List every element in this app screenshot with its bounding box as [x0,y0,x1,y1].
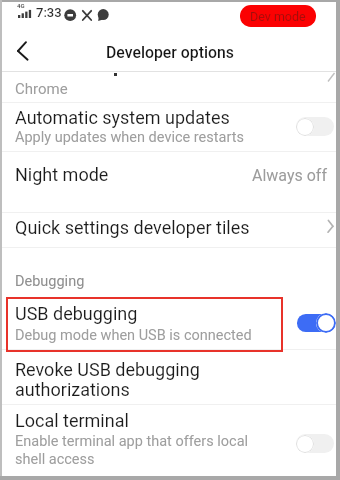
button[interactable] [0,151,340,212]
staticText: Enable terminal app that offers local [15,433,249,450]
staticText: Developer options [106,43,234,62]
staticText: 7:33 [36,5,62,20]
button[interactable] [0,290,340,349]
button[interactable] [0,404,340,476]
button[interactable] [296,434,334,453]
staticText: Debug mode when USB is connected [15,327,252,344]
staticText: Debugging [15,273,85,290]
staticText: Quick settings developer tiles [15,217,250,238]
button[interactable] [296,313,336,334]
staticText: shell access [15,451,95,468]
staticText: USB debugging [15,303,138,324]
staticText: Local terminal [15,410,129,431]
button[interactable] [6,38,42,64]
staticText: Revoke USB debugging [15,359,200,380]
button[interactable] [0,71,340,102]
staticText: Chrome [15,80,68,98]
button[interactable] [296,117,334,136]
button[interactable]: Dev mode [240,5,316,27]
button[interactable] [0,102,340,151]
staticText: Dev mode [250,9,306,24]
button[interactable] [0,212,340,247]
staticText: Apply updates when device restarts [15,129,244,146]
staticText: authorizations [15,379,130,400]
staticText: Automatic system updates [15,107,230,128]
button[interactable] [0,349,340,404]
staticText: 4G [17,2,25,9]
staticText: Always off [252,166,327,185]
staticText: Night mode [15,164,109,185]
